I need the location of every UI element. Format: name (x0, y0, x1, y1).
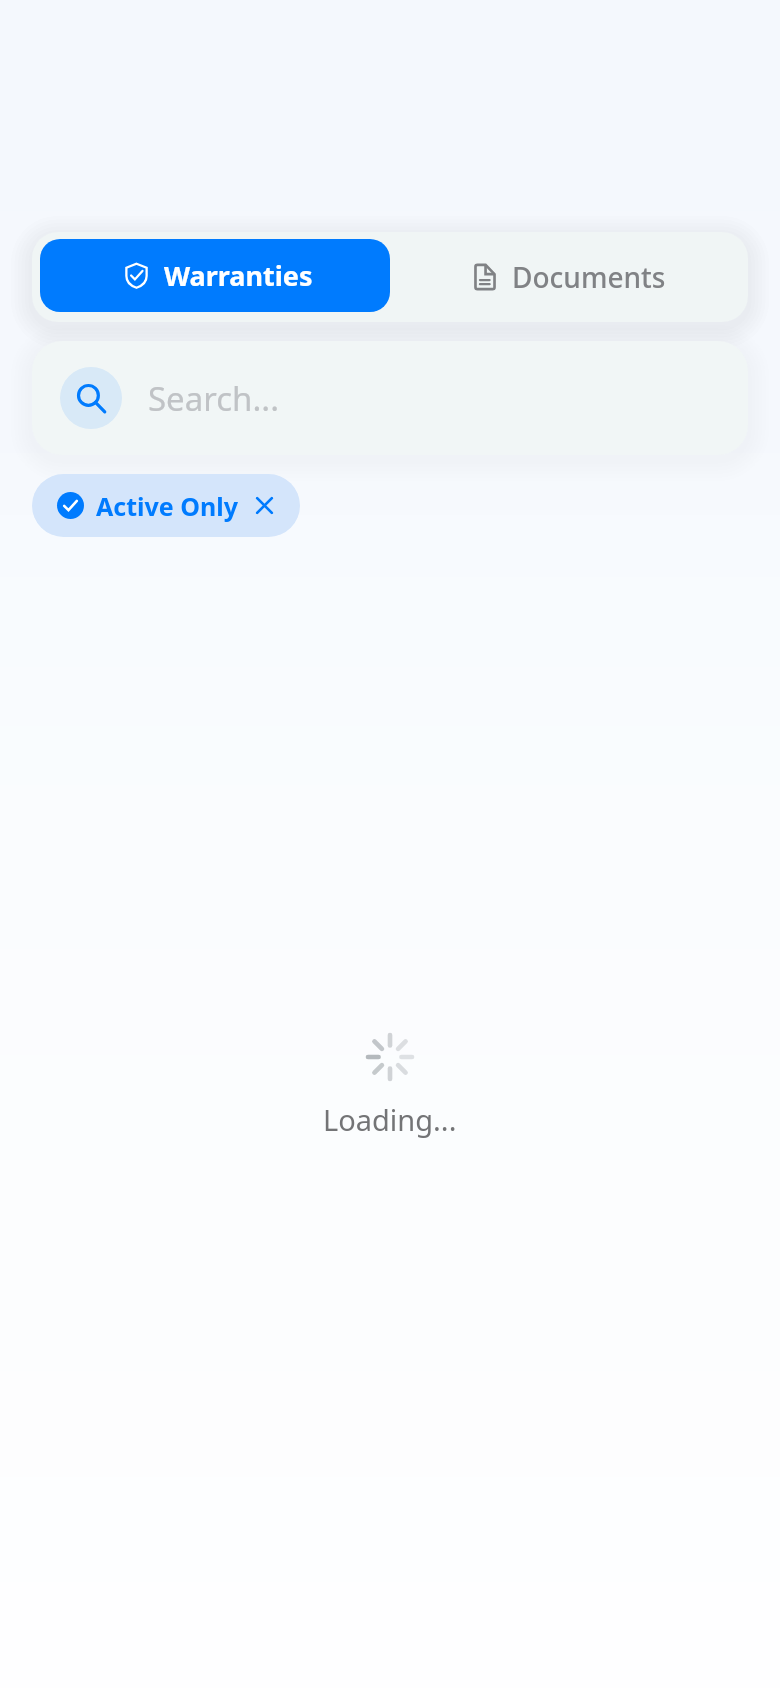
button[interactable]: Documents (390, 232, 748, 322)
other: Loading (368, 1035, 412, 1079)
other: Search (60, 367, 122, 429)
button[interactable]: Active Only (32, 474, 300, 537)
staticText: Loading... (323, 1100, 457, 1139)
staticText: Active Only (96, 489, 238, 523)
staticText: Warranties (164, 257, 313, 294)
other: Remove filter (254, 495, 275, 516)
button[interactable]: Warranties (40, 239, 390, 312)
staticText: Documents (512, 258, 666, 296)
button[interactable]: Search (32, 341, 748, 455)
staticText: Search... (148, 376, 279, 421)
